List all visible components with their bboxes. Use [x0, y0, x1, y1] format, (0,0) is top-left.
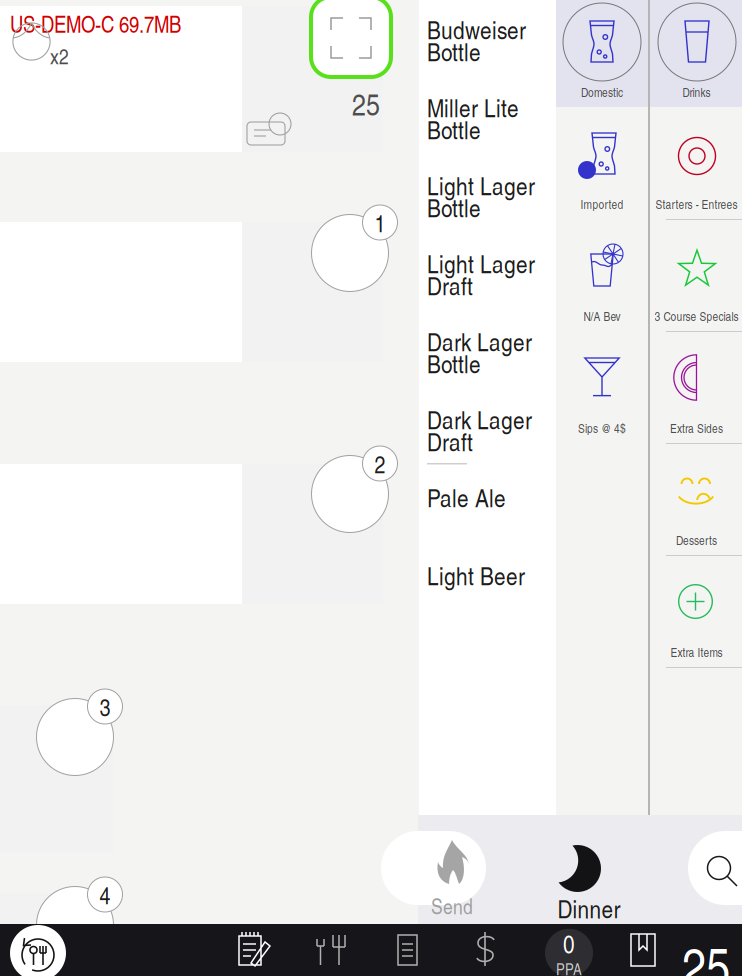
staticText: Miller Lite	[427, 90, 519, 124]
staticText: Bottle	[427, 34, 481, 68]
button[interactable]	[0, 464, 383, 604]
button[interactable]: Check	[395, 933, 421, 967]
staticText: Domestic	[581, 83, 623, 100]
staticText: US-DEMO-C 69.7MB	[10, 8, 181, 39]
staticText: 0	[563, 926, 575, 961]
staticText: Drinks	[682, 83, 710, 100]
staticText: Imported	[580, 195, 623, 212]
staticText: x2	[50, 41, 69, 70]
staticText: Sips @ 4$	[578, 419, 626, 436]
button[interactable]: Dinner	[537, 815, 641, 921]
staticText: Dinner	[557, 891, 620, 925]
button[interactable]: Send	[381, 831, 486, 905]
staticText: Bottle	[427, 190, 481, 224]
staticText: Light Beer	[427, 558, 525, 592]
staticText: PPA	[556, 958, 582, 976]
button[interactable]: Light Lager	[419, 156, 556, 234]
button[interactable]: Payment	[473, 931, 499, 969]
staticText: 25	[352, 82, 380, 124]
staticText: Light Lager	[427, 168, 535, 202]
staticText: 4	[99, 878, 110, 911]
button[interactable]: Dark Lager	[419, 312, 556, 390]
staticText: 1	[374, 206, 385, 239]
staticText: 3 Course Specials	[654, 307, 738, 324]
button[interactable]: Light Beer	[419, 546, 556, 624]
staticText: Draft	[427, 424, 473, 458]
button[interactable]: Courses	[314, 933, 348, 967]
button[interactable]: Pale Ale	[419, 468, 556, 546]
staticText: Send	[431, 891, 473, 920]
staticText: Budweiser	[427, 12, 526, 46]
staticText: Desserts	[676, 531, 717, 548]
button[interactable]: Order notes	[237, 931, 273, 969]
staticText: N/A Bev	[583, 307, 620, 324]
staticText: Bottle	[427, 346, 481, 380]
staticText: Starters - Entrees	[655, 195, 737, 212]
staticText: 2	[374, 447, 385, 480]
staticText: Bottle	[427, 112, 481, 146]
button[interactable]: Search	[688, 831, 742, 905]
button[interactable]	[0, 705, 113, 853]
staticText: Light Lager	[427, 246, 535, 280]
button[interactable]	[0, 222, 383, 362]
button[interactable]: Miller Lite	[419, 78, 556, 156]
staticText: Extra Sides	[670, 419, 723, 436]
staticText: 3	[99, 690, 110, 723]
button[interactable]	[0, 6, 383, 152]
button[interactable]	[0, 893, 113, 976]
staticText: Pale Ale	[427, 480, 506, 514]
staticText: Extra Items	[670, 643, 722, 660]
button[interactable]: PPA	[545, 926, 593, 976]
staticText: 25	[682, 928, 730, 976]
button[interactable]: Dark Lager	[419, 390, 556, 468]
button[interactable]: Budweiser	[419, 0, 556, 78]
button[interactable]: Light Lager	[419, 234, 556, 312]
staticText: Dark Lager	[427, 324, 532, 358]
staticText: Dark Lager	[427, 402, 532, 436]
button[interactable]: Reorder	[10, 925, 66, 976]
staticText: Draft	[427, 268, 473, 302]
button[interactable]: Bookmarks	[629, 932, 659, 970]
